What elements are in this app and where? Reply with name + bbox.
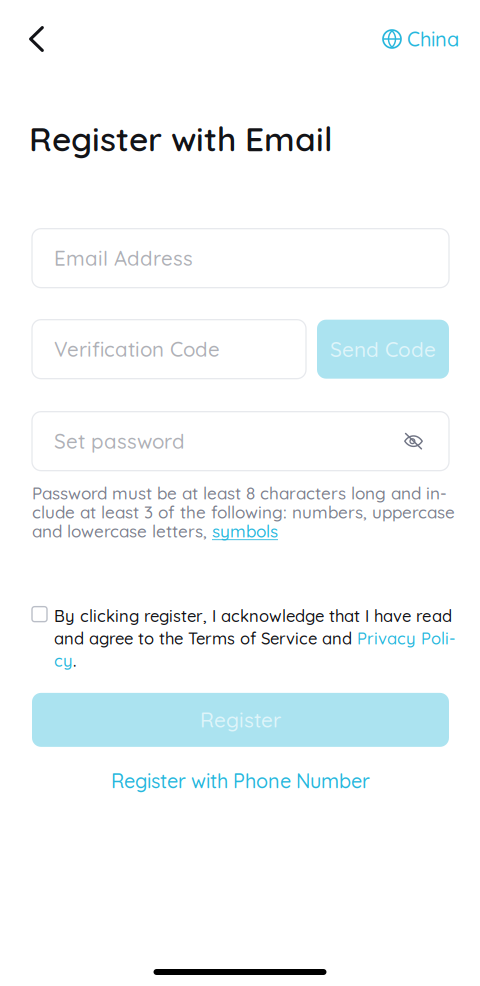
- button[interactable]: Send Code: [317, 320, 449, 379]
- staticText: clude at least 3 of the following: numbe…: [32, 501, 455, 523]
- staticText: .: [73, 650, 76, 671]
- button[interactable]: Verification Code: [32, 320, 306, 379]
- button[interactable]: Agree to the Terms of Service: [32, 605, 54, 622]
- staticText: Register: [200, 707, 281, 733]
- button[interactable]: Privacy Poli-: [357, 628, 455, 649]
- button[interactable]: cy: [54, 650, 73, 671]
- staticText: Register with Email: [29, 118, 333, 160]
- staticText: Password must be at least 8 characters l…: [32, 482, 447, 504]
- button[interactable]: Back: [0, 16, 60, 62]
- staticText: Verification Code: [54, 336, 220, 362]
- button[interactable]: Set password: [32, 412, 449, 471]
- staticText: Email Address: [54, 245, 193, 271]
- button[interactable]: China: [383, 16, 480, 61]
- staticText: Send Code: [330, 336, 436, 362]
- staticText: China: [407, 26, 459, 51]
- staticText: cy: [54, 650, 73, 671]
- button[interactable]: Register with Phone Number: [32, 764, 449, 798]
- staticText: Set password: [54, 428, 185, 454]
- button[interactable]: symbols: [212, 520, 278, 542]
- staticText: symbols: [212, 520, 278, 542]
- staticText: Register with Phone Number: [111, 768, 370, 793]
- staticText: By clicking register, I acknowledge that…: [54, 605, 452, 626]
- staticText: and lowercase letters,: [32, 520, 212, 542]
- button[interactable]: Email Address: [32, 229, 449, 288]
- button[interactable]: Register: [32, 693, 449, 747]
- staticText: Privacy Poli-: [357, 628, 455, 649]
- staticText: and agree to the Terms of Service and: [54, 628, 357, 649]
